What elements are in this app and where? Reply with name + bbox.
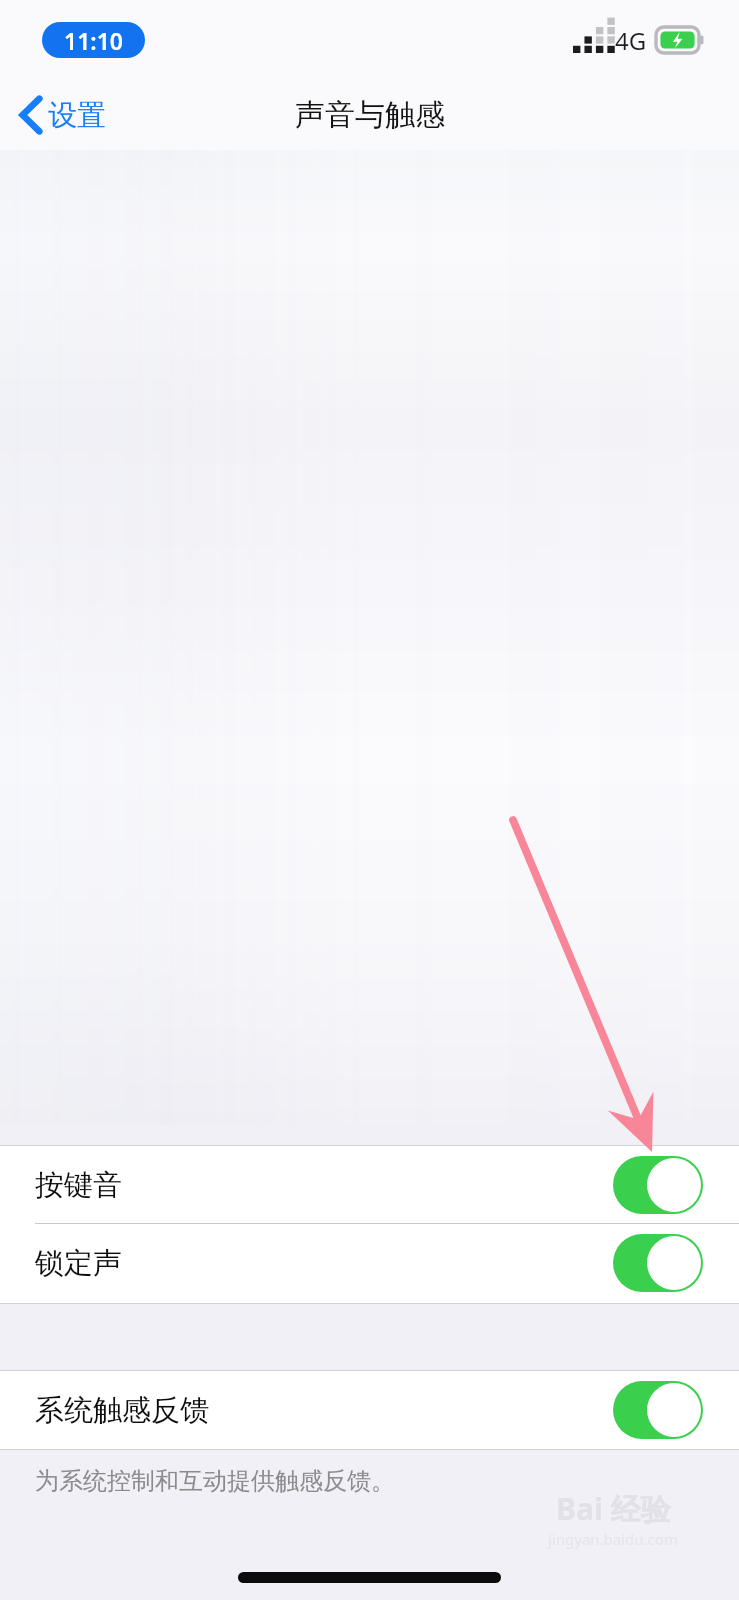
- staticText: 按键音: [35, 1167, 122, 1204]
- staticText: 设置: [48, 97, 106, 134]
- staticText: 11:10: [64, 25, 123, 56]
- staticText: Bai 经验: [556, 1488, 671, 1529]
- staticText: 4G: [615, 24, 647, 57]
- staticText: 为系统控制和互动提供触感反馈。: [35, 1466, 395, 1496]
- staticText: 声音与触感: [295, 96, 445, 134]
- staticText: jingyan.baidu.com: [548, 1529, 678, 1549]
- button[interactable]: 锁定声: [0, 1224, 739, 1302]
- button[interactable]: 按键音: [0, 1146, 739, 1224]
- staticText: 锁定声: [35, 1245, 122, 1282]
- button[interactable]: 系统触感反馈: [0, 1371, 739, 1449]
- staticText: 系统触感反馈: [35, 1392, 209, 1429]
- button[interactable]: 锁定声 开关: [613, 1234, 703, 1292]
- button[interactable]: 设置: [14, 86, 112, 144]
- button[interactable]: 系统触感反馈 开关: [613, 1381, 703, 1439]
- button[interactable]: 按键音 开关: [613, 1156, 703, 1214]
